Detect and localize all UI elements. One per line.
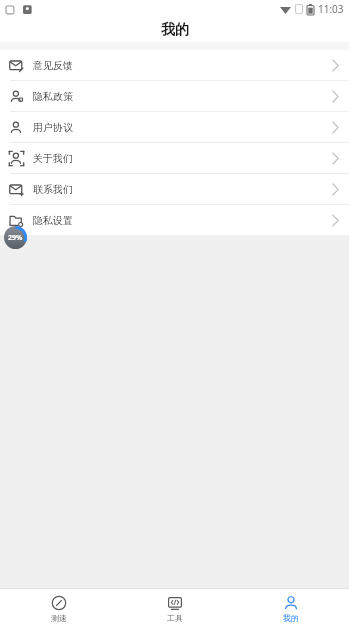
staticText: 隐私政策 xyxy=(33,90,73,103)
staticText: 用户协议 xyxy=(33,121,73,134)
staticText: 测速 xyxy=(51,613,67,623)
button[interactable]: 用户协议 xyxy=(0,112,349,142)
staticText: 隐私设置 xyxy=(33,214,73,227)
staticText: 关于我们 xyxy=(33,152,73,165)
button[interactable]: 隐私政策 xyxy=(0,81,349,111)
staticText: 意见反馈 xyxy=(33,59,73,72)
button[interactable]: 关于我们 xyxy=(0,143,349,173)
button[interactable]: 工具 xyxy=(117,589,233,629)
staticText: 我的 xyxy=(283,613,299,623)
staticText: 工具 xyxy=(167,613,183,623)
button[interactable]: 联系我们 xyxy=(0,174,349,204)
button[interactable]: 测速 xyxy=(0,589,117,629)
staticText: 联系我们 xyxy=(33,183,73,196)
staticText: 11:03 xyxy=(318,2,344,16)
staticText: 29% xyxy=(8,233,23,243)
staticText: 我的 xyxy=(161,21,189,39)
button[interactable]: 我的 xyxy=(233,589,349,629)
button[interactable]: 隐私设置 xyxy=(0,205,349,235)
button[interactable]: 意见反馈 xyxy=(0,50,349,80)
